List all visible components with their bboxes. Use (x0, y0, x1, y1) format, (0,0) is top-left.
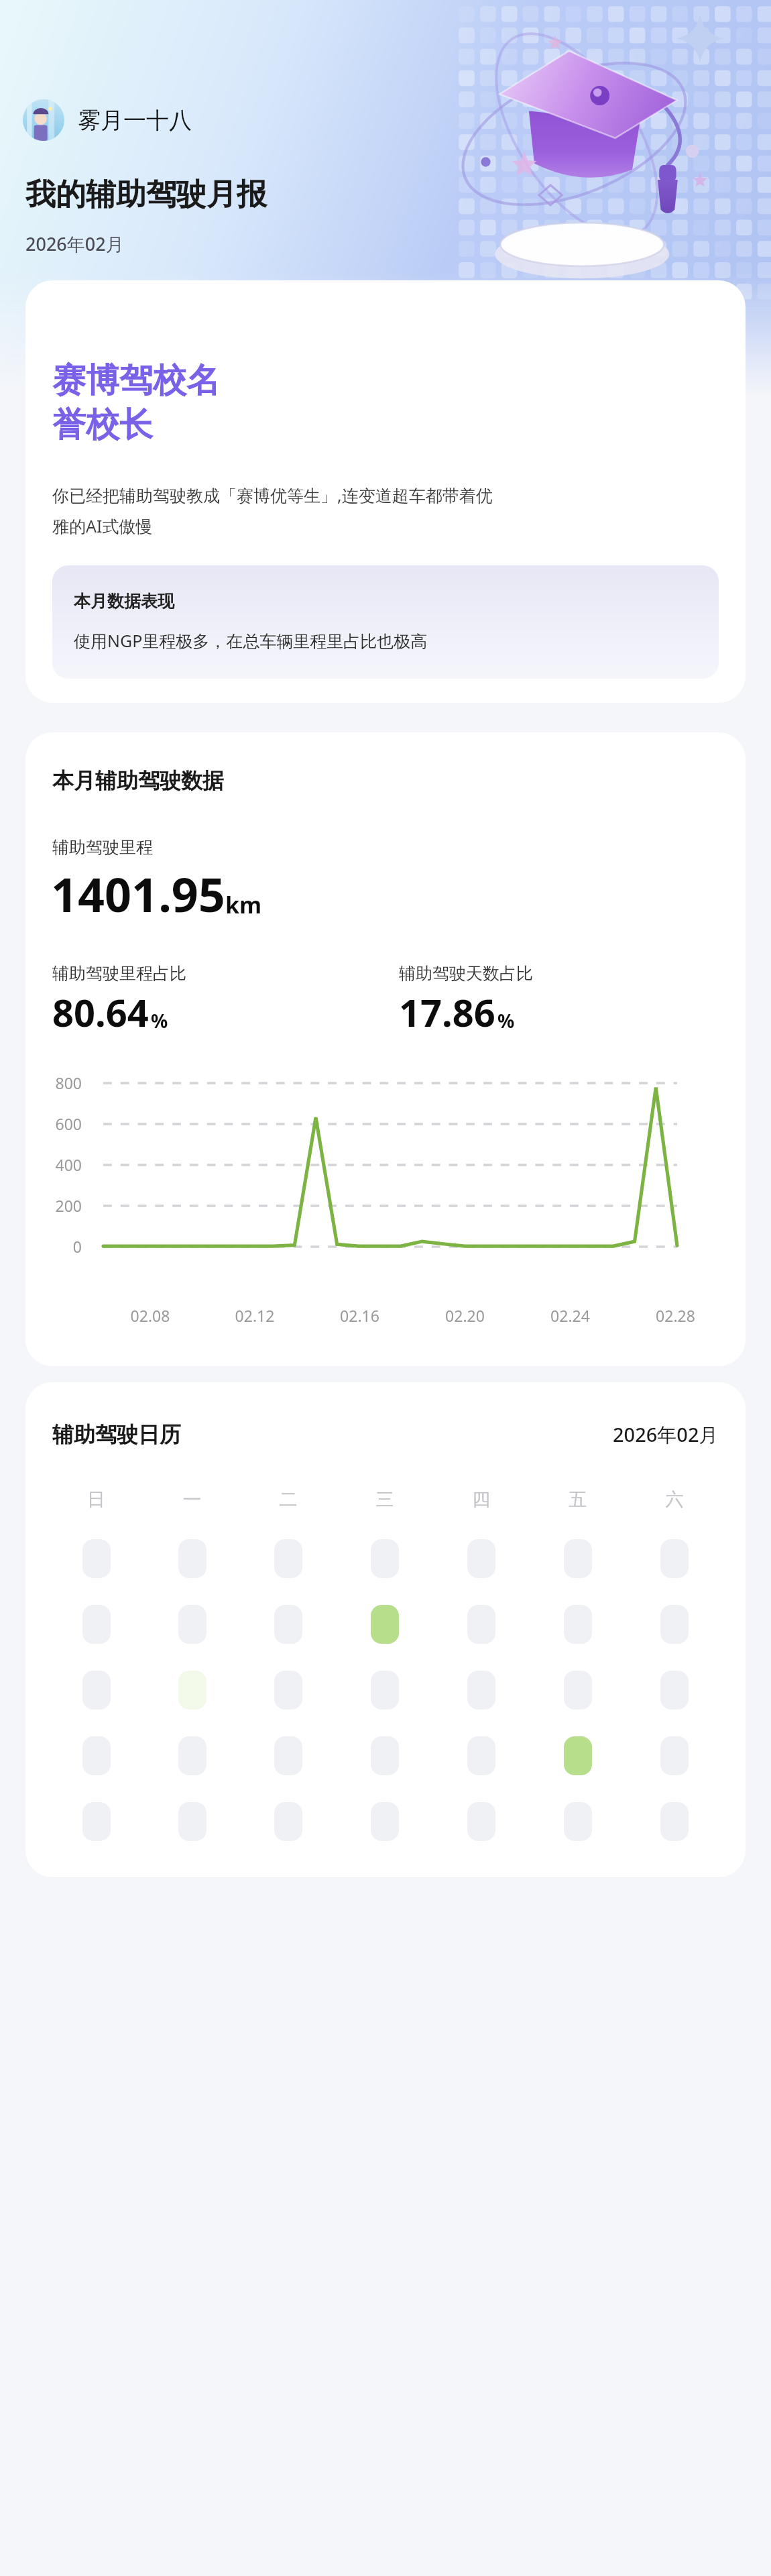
staticText: 800 (25, 1072, 82, 1093)
button[interactable] (564, 1802, 592, 1841)
button[interactable] (274, 1671, 302, 1710)
button[interactable] (82, 1736, 111, 1775)
staticText: 日 (48, 1488, 144, 1511)
button[interactable] (564, 1605, 592, 1644)
button[interactable] (660, 1605, 689, 1644)
staticText: 赛博驾校名 誉校长 (52, 359, 220, 446)
staticText: % (497, 1008, 515, 1033)
button[interactable] (371, 1736, 399, 1775)
staticText: 六 (626, 1488, 723, 1511)
staticText: 二 (240, 1488, 337, 1511)
staticText: 2026年02月 (613, 1421, 719, 1448)
staticText: km (225, 889, 262, 920)
button[interactable] (660, 1671, 689, 1710)
button[interactable]: 辅助驾驶天数占比 (399, 963, 746, 1038)
button[interactable]: 辅助驾驶日历 (25, 1382, 746, 1877)
button[interactable]: 本月数据表现 (52, 565, 719, 679)
button[interactable] (82, 1539, 111, 1578)
staticText: 本月数据表现 (74, 591, 174, 612)
staticText: 02.28 (623, 1305, 728, 1326)
button[interactable] (467, 1605, 495, 1644)
button[interactable] (467, 1802, 495, 1841)
staticText: 四 (433, 1488, 530, 1511)
staticText: 你已经把辅助驾驶教成「赛博优等生」,连变道超车都带着优 雅的AI式傲慢 (52, 484, 493, 537)
button[interactable] (178, 1539, 206, 1578)
button[interactable] (467, 1736, 495, 1775)
staticText: 三 (337, 1488, 433, 1511)
button[interactable] (564, 1736, 592, 1775)
button[interactable] (274, 1605, 302, 1644)
button[interactable]: 赛博驾校名 誉校长 (25, 280, 746, 703)
button[interactable] (660, 1802, 689, 1841)
button[interactable] (178, 1736, 206, 1775)
staticText: 辅助驾驶天数占比 (399, 963, 533, 984)
button[interactable] (371, 1802, 399, 1841)
staticText: 一 (144, 1488, 240, 1511)
button[interactable] (371, 1671, 399, 1710)
staticText: 400 (25, 1154, 82, 1175)
staticText: 1401.95 (51, 862, 225, 926)
staticText: % (151, 1008, 168, 1033)
button[interactable] (660, 1539, 689, 1578)
button[interactable] (178, 1802, 206, 1841)
button[interactable] (82, 1605, 111, 1644)
button[interactable]: 雾月一十八 (23, 99, 192, 141)
button[interactable] (82, 1802, 111, 1841)
button[interactable] (178, 1605, 206, 1644)
button[interactable] (564, 1539, 592, 1578)
staticText: 辅助驾驶里程占比 (52, 963, 186, 984)
button[interactable] (82, 1671, 111, 1710)
staticText: 02.12 (202, 1305, 307, 1326)
button[interactable] (274, 1736, 302, 1775)
button[interactable] (178, 1671, 206, 1710)
button[interactable] (371, 1605, 399, 1644)
staticText: 辅助驾驶日历 (52, 1421, 181, 1448)
staticText: 17.86 (399, 987, 495, 1038)
staticText: 2026年02月 (25, 231, 124, 256)
button[interactable]: 辅助驾驶里程占比 (52, 963, 399, 1038)
staticText: 02.16 (307, 1305, 412, 1326)
staticText: 0 (25, 1236, 82, 1257)
button[interactable] (564, 1671, 592, 1710)
staticText: 200 (25, 1195, 82, 1216)
button[interactable] (467, 1539, 495, 1578)
staticText: 02.08 (98, 1305, 202, 1326)
staticText: 辅助驾驶里程 (52, 837, 153, 858)
staticText: 五 (530, 1488, 626, 1511)
staticText: 使用NGP里程极多，在总车辆里程里占比也极高 (74, 629, 428, 652)
staticText: 80.64 (52, 987, 149, 1038)
staticText: 我的辅助驾驶月报 (25, 176, 267, 214)
staticText: 本月辅助驾驶数据 (52, 767, 224, 794)
staticText: 600 (25, 1113, 82, 1134)
staticText: 雾月一十八 (78, 106, 192, 135)
button[interactable] (274, 1802, 302, 1841)
button[interactable] (274, 1539, 302, 1578)
staticText: 02.20 (412, 1305, 518, 1326)
staticText: 02.24 (518, 1305, 623, 1326)
button[interactable] (371, 1539, 399, 1578)
button[interactable]: 本月辅助驾驶数据 (25, 732, 746, 1366)
button[interactable] (467, 1671, 495, 1710)
button[interactable] (660, 1736, 689, 1775)
